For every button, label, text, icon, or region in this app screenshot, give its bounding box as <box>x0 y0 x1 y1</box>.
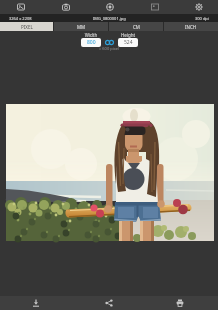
button[interactable]: PIXEL <box>0 22 53 31</box>
staticText: PIXEL <box>21 24 33 30</box>
button[interactable] <box>103 0 117 14</box>
staticText: 3264 x 2208 <box>9 16 32 21</box>
button[interactable] <box>100 296 118 310</box>
staticText: = 600 pixel <box>92 46 126 51</box>
button[interactable] <box>148 0 162 14</box>
button[interactable] <box>171 296 189 310</box>
staticText: 524 <box>124 39 133 46</box>
staticText: CM <box>133 24 140 30</box>
staticText: IMG_0800001.jpg <box>93 16 126 21</box>
staticText: 300 dpi <box>195 16 209 21</box>
staticText: INCH <box>185 24 197 30</box>
button[interactable]: 800 <box>81 38 101 47</box>
button[interactable]: 524 <box>118 38 138 47</box>
button[interactable] <box>27 296 45 310</box>
button[interactable] <box>14 0 28 14</box>
button[interactable] <box>59 0 73 14</box>
staticText: MM <box>77 24 86 30</box>
button[interactable]: INCH <box>164 22 218 31</box>
staticText: Height <box>113 32 143 38</box>
staticText: Width <box>76 32 106 38</box>
button[interactable] <box>192 0 206 14</box>
button[interactable]: MM <box>54 22 108 31</box>
staticText: 800 <box>87 39 96 46</box>
button[interactable]: CM <box>109 22 163 31</box>
button[interactable] <box>104 39 115 46</box>
